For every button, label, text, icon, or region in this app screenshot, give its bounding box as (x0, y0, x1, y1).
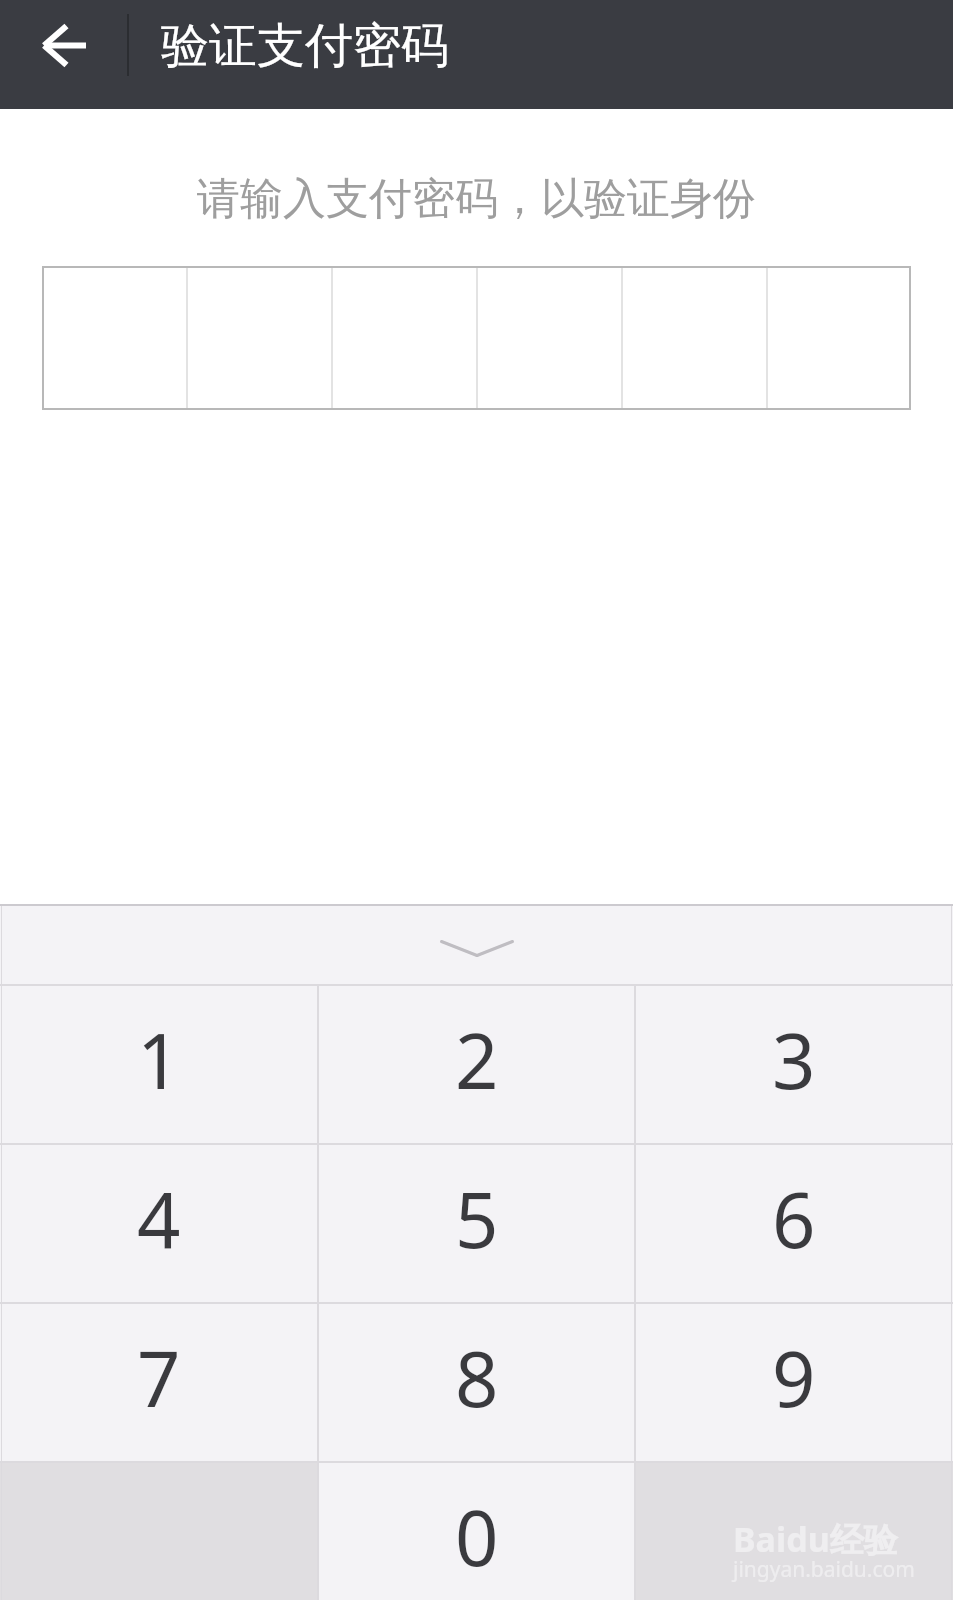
button[interactable]: 5 (318, 1143, 636, 1302)
button[interactable]: 3 (635, 984, 953, 1143)
staticText: 6 (772, 1167, 816, 1271)
staticText: 1 (137, 1008, 181, 1112)
staticText: Baidu经验 (733, 1516, 898, 1562)
button[interactable]: Password digit 4 (478, 266, 621, 410)
button[interactable]: 4 (0, 1143, 318, 1302)
button[interactable]: 2 (318, 984, 636, 1143)
button[interactable]: Password digit 5 (623, 266, 766, 410)
staticText: 7 (137, 1326, 181, 1430)
staticText: 9 (772, 1326, 816, 1430)
staticText: 验证支付密码 (161, 16, 449, 76)
button[interactable]: 9 (635, 1302, 953, 1461)
staticText: 2 (455, 1008, 499, 1112)
button[interactable]: Back (10, 0, 118, 109)
button[interactable]: 7 (0, 1302, 318, 1461)
staticText: jingyan.baidu.com (733, 1555, 915, 1584)
staticText: 请输入支付密码，以验证身份 (0, 172, 953, 226)
staticText: 3 (772, 1008, 816, 1112)
button[interactable]: Password digit 1 (42, 266, 186, 410)
button[interactable]: 0 (318, 1461, 636, 1600)
button[interactable]: 1 (0, 984, 318, 1143)
staticText: 0 (455, 1485, 499, 1589)
staticText: 4 (137, 1167, 181, 1271)
button[interactable]: Password digit 2 (188, 266, 331, 410)
button[interactable]: Password digit 3 (333, 266, 476, 410)
button[interactable]: 6 (635, 1143, 953, 1302)
button[interactable]: Delete (635, 1461, 953, 1600)
button[interactable]: Hide keyboard (0, 904, 953, 984)
staticText: 5 (455, 1167, 499, 1271)
staticText: 8 (455, 1326, 499, 1430)
button[interactable]: 8 (318, 1302, 636, 1461)
button[interactable]: Password digit 6 (768, 266, 911, 410)
